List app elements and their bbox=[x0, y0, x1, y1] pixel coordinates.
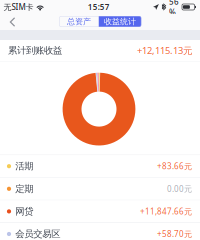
staticText: 活期 bbox=[15, 160, 33, 172]
button[interactable]: 定期 bbox=[0, 178, 200, 200]
button[interactable]: 网贷 bbox=[0, 200, 200, 222]
button[interactable]: 活期 bbox=[0, 155, 200, 177]
staticText: 0.00元 bbox=[167, 183, 192, 194]
staticText: 网贷 bbox=[15, 206, 33, 217]
staticText: +12,115.13元 bbox=[137, 44, 192, 57]
button[interactable]: 收益统计 bbox=[99, 16, 141, 27]
staticText: 累计到账收益 bbox=[8, 45, 62, 56]
staticText: 总资产 bbox=[67, 17, 91, 26]
button[interactable]: 会员交易区 bbox=[0, 223, 200, 240]
staticText: +58.70元 bbox=[157, 229, 192, 239]
staticText: 定期 bbox=[15, 183, 33, 195]
staticText: 收益统计 bbox=[104, 17, 136, 26]
staticText: +83.66元 bbox=[157, 161, 192, 171]
staticText: 56% bbox=[169, 0, 179, 18]
staticText: +11,847.66元 bbox=[140, 206, 192, 217]
staticText: 会员交易区 bbox=[15, 228, 60, 240]
button[interactable]: Back bbox=[3, 14, 21, 30]
button[interactable]: 总资产 bbox=[59, 16, 99, 27]
staticText: 无SIM卡 bbox=[3, 2, 33, 12]
staticText: 15:57 bbox=[88, 2, 110, 12]
